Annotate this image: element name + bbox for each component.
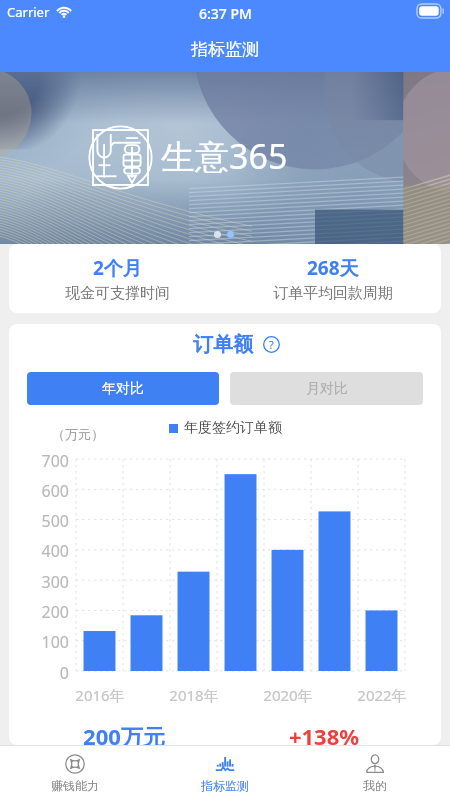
staticText: 指标监测 bbox=[201, 778, 249, 793]
button[interactable]: 月对比 bbox=[230, 372, 423, 405]
staticText: 6:37 PM bbox=[199, 4, 252, 23]
staticText: 200万元 bbox=[74, 721, 174, 745]
staticText: ? bbox=[269, 337, 274, 352]
button[interactable]: 帮助 bbox=[263, 336, 280, 353]
staticText: 我的 bbox=[363, 778, 387, 793]
staticText: 300 bbox=[27, 571, 69, 593]
button[interactable]: 指标监测 bbox=[150, 746, 300, 800]
button[interactable]: 赚钱能力 bbox=[0, 746, 150, 800]
staticText: 700 bbox=[27, 450, 69, 472]
staticText: 268天 bbox=[307, 255, 359, 281]
staticText: （万元） bbox=[52, 426, 104, 442]
staticText: 600 bbox=[27, 480, 69, 502]
staticText: 赚钱能力 bbox=[51, 778, 99, 793]
staticText: 2020年 bbox=[258, 685, 318, 705]
staticText: 年对比 bbox=[102, 380, 144, 398]
staticText: 400 bbox=[27, 540, 69, 562]
staticText: 指标监测 bbox=[191, 39, 259, 60]
staticText: 0 bbox=[27, 662, 69, 684]
button[interactable]: 年对比 bbox=[27, 372, 219, 405]
staticText: 2018年 bbox=[164, 685, 224, 705]
button[interactable]: 2个月 bbox=[9, 244, 225, 313]
staticText: 200 bbox=[27, 601, 69, 623]
staticText: 订单平均回款周期 bbox=[273, 284, 393, 303]
staticText: 100 bbox=[27, 631, 69, 653]
staticText: 500 bbox=[27, 510, 69, 532]
staticText: 2022年 bbox=[352, 685, 412, 705]
staticText: 订单额 bbox=[193, 332, 253, 357]
staticText: 年度签约订单额 bbox=[184, 419, 282, 437]
staticText: +138% bbox=[274, 721, 374, 745]
staticText: 生意365 bbox=[161, 133, 288, 179]
button[interactable]: 我的 bbox=[300, 746, 450, 800]
staticText: 月对比 bbox=[306, 380, 348, 398]
staticText: Carrier bbox=[7, 3, 50, 21]
staticText: 现金可支撑时间 bbox=[65, 284, 170, 303]
button[interactable]: 268天 bbox=[225, 244, 441, 313]
staticText: 2016年 bbox=[70, 685, 130, 705]
staticText: 2个月 bbox=[93, 255, 142, 281]
